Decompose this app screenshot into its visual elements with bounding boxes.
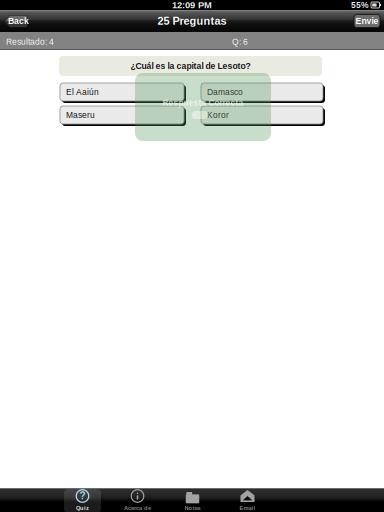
staticText: ¿Cuál es la capital de Lesoto? (130, 61, 250, 71)
staticText: 55% (351, 0, 369, 10)
staticText: Back (8, 16, 29, 26)
staticText: Notas (184, 505, 200, 511)
staticText: Resultado: 4 (6, 37, 54, 46)
staticText: 25 Preguntas (157, 15, 226, 27)
button[interactable]: Back (4, 14, 28, 28)
staticText: Respuesta Correcta (162, 98, 243, 108)
button[interactable]: Email (220, 488, 275, 512)
staticText: Acerca de (124, 505, 151, 511)
button[interactable]: ? (55, 488, 110, 512)
button[interactable]: Acerca de (110, 488, 165, 512)
staticText: Q: 6 (232, 37, 248, 46)
staticText: Envie (355, 16, 378, 26)
staticText: Email (239, 505, 255, 511)
staticText: Maseru (66, 110, 95, 120)
staticText: Koror (207, 110, 229, 120)
staticText: 12:09 PM (172, 0, 212, 10)
button[interactable]: Maseru (59, 105, 185, 125)
staticText: Quiz (76, 505, 89, 511)
button[interactable]: El Aaiún (59, 82, 185, 102)
staticText: El Aaiún (66, 87, 99, 97)
button[interactable]: Koror (200, 105, 324, 125)
button[interactable]: Damasco (200, 82, 324, 102)
staticText: ? (79, 490, 85, 501)
button[interactable]: Envie (354, 14, 380, 28)
staticText: Damasco (207, 87, 243, 97)
button[interactable]: Notas (165, 488, 220, 512)
